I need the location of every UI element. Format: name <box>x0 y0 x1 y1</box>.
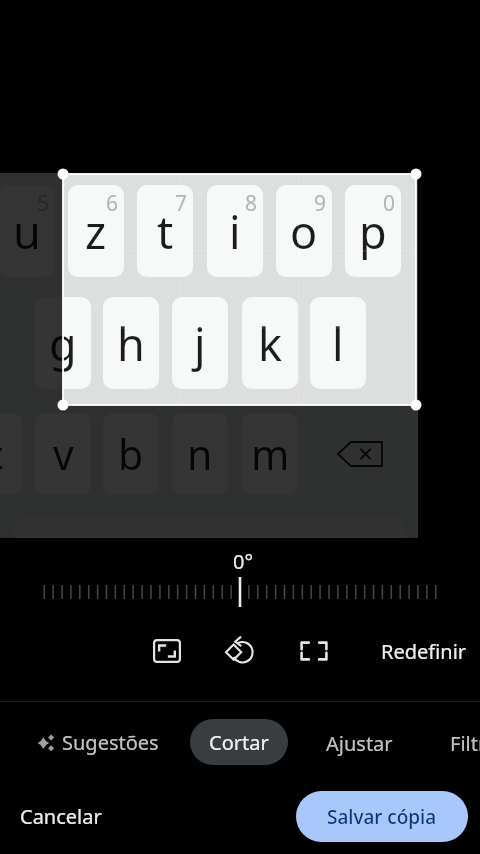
staticText: p <box>359 201 387 262</box>
button[interactable]: Free form crop <box>290 627 338 675</box>
staticText: Cancelar <box>20 803 102 830</box>
staticText: Salvar cópia <box>327 804 437 830</box>
button[interactable]: Cortar <box>190 719 288 765</box>
staticText: k <box>258 313 283 374</box>
button[interactable]: Sugestões <box>37 719 159 766</box>
staticText: 7 <box>175 189 188 213</box>
staticText: Redefinir <box>381 638 467 665</box>
staticText: b <box>118 426 144 482</box>
staticText: h <box>117 313 145 374</box>
staticText: 6 <box>106 189 119 213</box>
staticText: 9 <box>314 189 327 213</box>
button[interactable]: Filtros <box>437 719 480 768</box>
button[interactable]: Aspect ratio <box>143 627 191 675</box>
staticText: Filtros <box>450 730 480 757</box>
staticText: c <box>0 426 4 482</box>
staticText: Ajustar <box>326 730 393 757</box>
staticText: g <box>49 313 77 374</box>
staticText: v <box>53 426 74 482</box>
button[interactable]: Redefinir <box>368 629 476 673</box>
staticText: 0° <box>233 548 253 575</box>
staticText: z <box>85 201 107 262</box>
staticText: o <box>290 201 318 262</box>
staticText: 5 <box>37 189 50 213</box>
staticText: Cortar <box>209 729 269 756</box>
button[interactable]: Rotate <box>216 627 264 675</box>
staticText: 0 <box>383 189 396 213</box>
staticText: n <box>187 426 213 482</box>
staticText: m <box>251 426 290 482</box>
button[interactable]: Salvar cópia <box>296 791 468 842</box>
button[interactable]: Ajustar <box>313 719 405 768</box>
button[interactable]: Cancelar <box>6 792 116 841</box>
staticText: i <box>229 201 241 262</box>
staticText: j <box>194 313 206 374</box>
staticText: t <box>157 201 174 262</box>
staticText: 8 <box>245 189 258 213</box>
staticText: u <box>13 201 41 262</box>
staticText: l <box>332 313 344 374</box>
staticText: Sugestões <box>62 729 159 756</box>
